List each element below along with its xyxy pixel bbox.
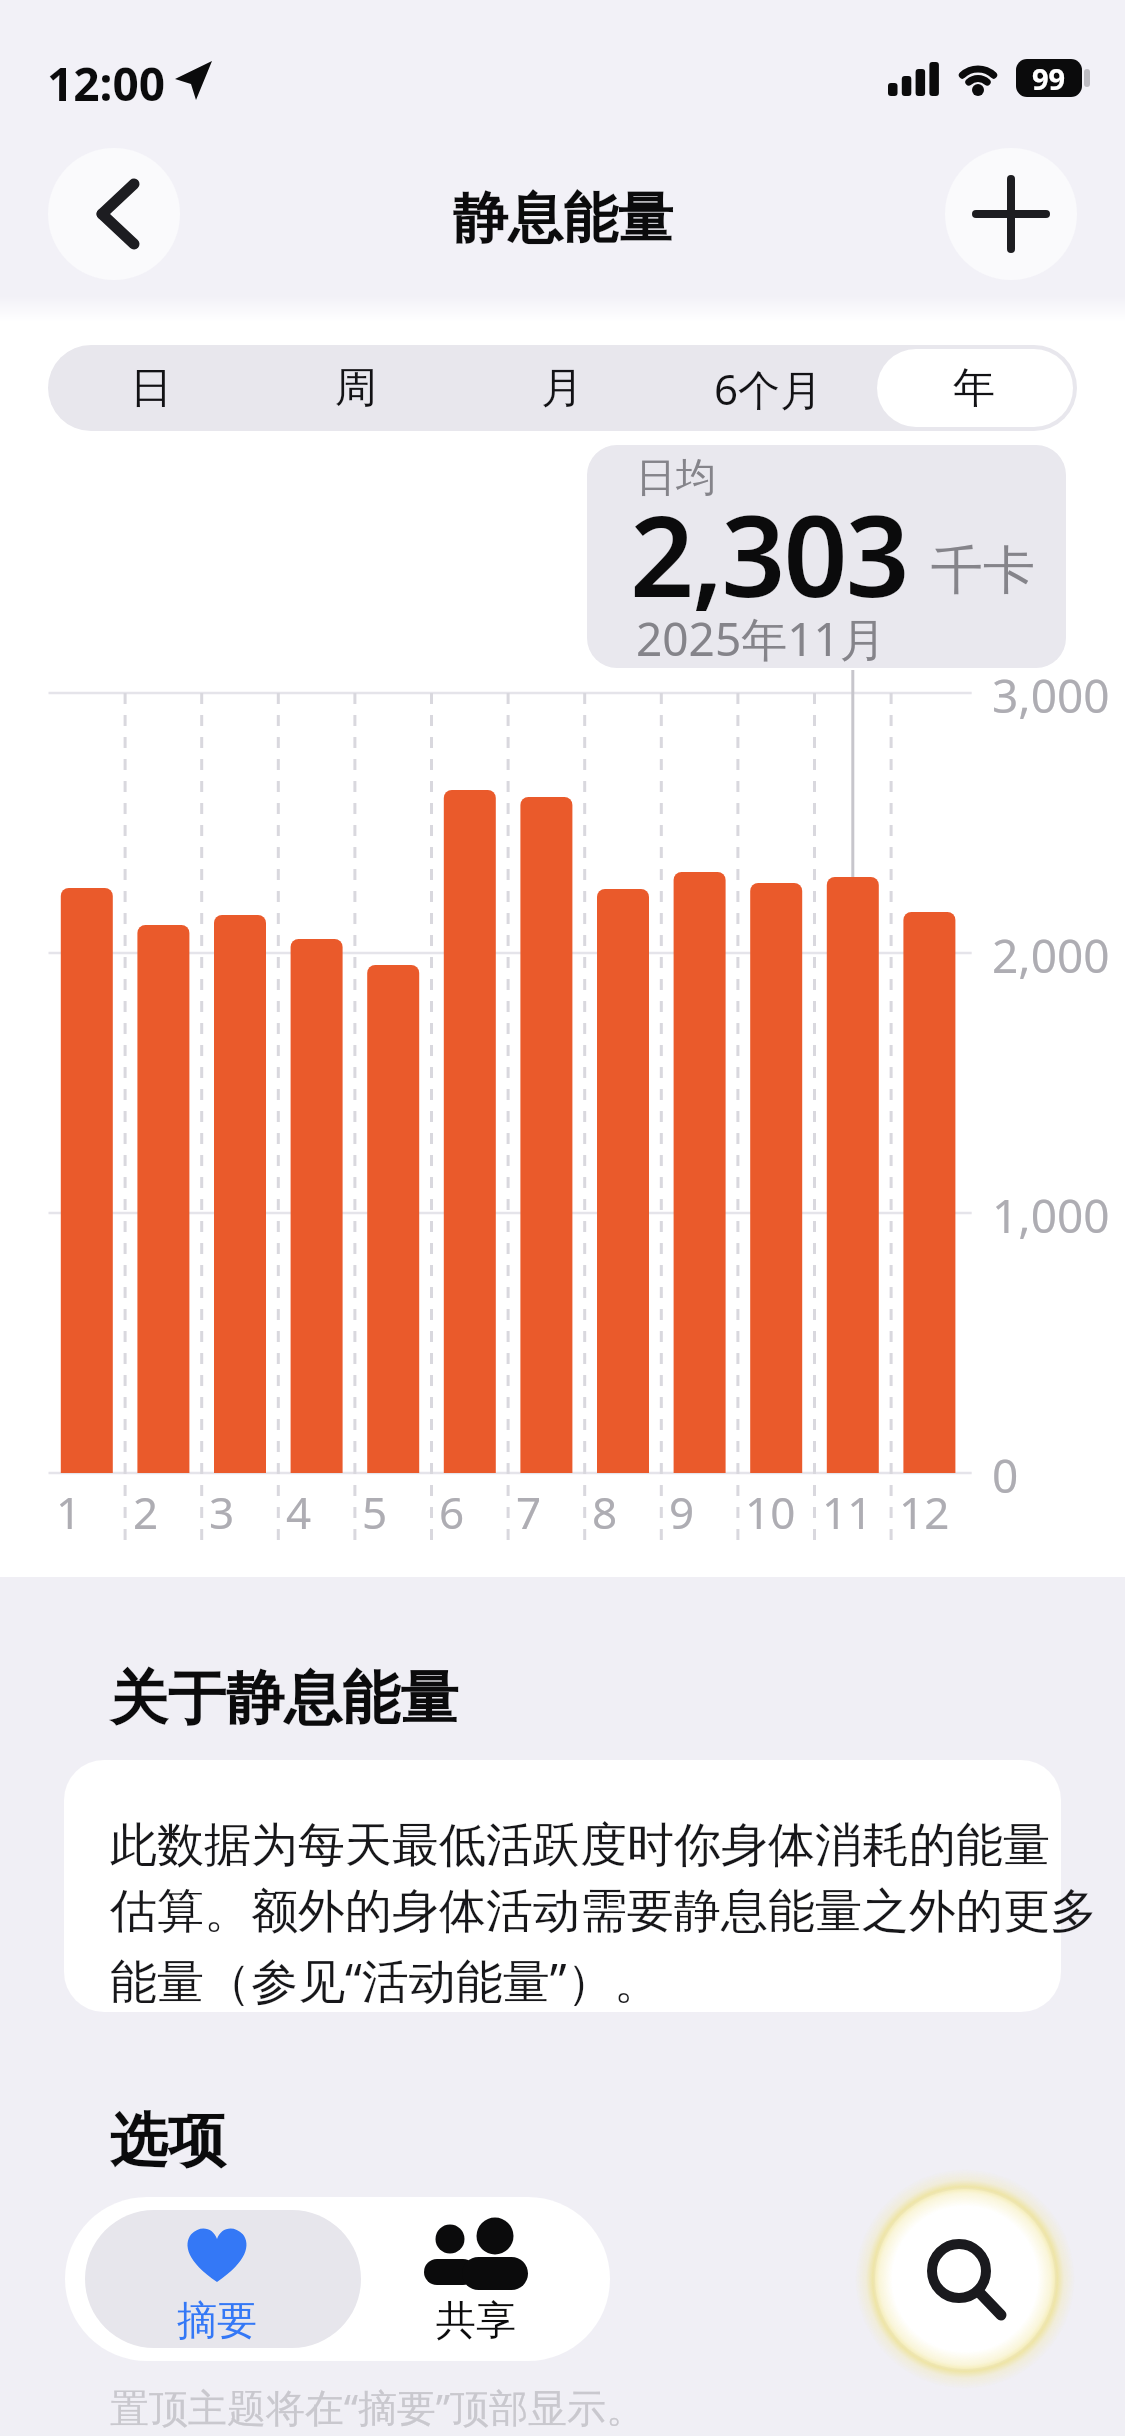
staticText: 共享 <box>436 2295 516 2345</box>
staticText: 2,000 <box>992 924 1110 987</box>
staticText: 6个月 <box>714 360 823 417</box>
button[interactable]: 周 <box>253 345 459 431</box>
staticText: 年 <box>953 362 995 415</box>
staticText: 0 <box>992 1444 1019 1507</box>
staticText: 1 <box>56 1482 82 1542</box>
staticText: 千卡 <box>931 538 1035 604</box>
staticText: 99 <box>1032 59 1066 97</box>
staticText: 能量（参见“活动能量”）。 <box>110 1948 661 2012</box>
staticText: 此数据为每天最低活跃度时你身体消耗的能量 <box>110 1816 1050 1875</box>
staticText: 4 <box>286 1482 312 1542</box>
staticText: 估算。额外的身体活动需要静息能量之外的更多 <box>110 1882 1097 1941</box>
button[interactable]: 日 <box>48 345 253 431</box>
staticText: 周 <box>335 362 377 415</box>
staticText: 3 <box>209 1482 235 1542</box>
button[interactable]: 6个月 <box>665 345 871 431</box>
button[interactable]: 月 <box>459 345 665 431</box>
staticText: 日 <box>130 362 172 415</box>
staticText: 12 <box>899 1482 950 1542</box>
staticText: 月 <box>541 362 583 415</box>
staticText: 3,000 <box>992 664 1110 727</box>
staticText: 静息能量 <box>453 184 673 253</box>
staticText: 选项 <box>110 2104 226 2177</box>
staticText: 9 <box>669 1482 695 1542</box>
staticText: 8 <box>592 1482 618 1542</box>
staticText: 11 <box>822 1482 873 1542</box>
staticText: 5 <box>362 1482 388 1542</box>
button[interactable]: 年 <box>871 345 1077 431</box>
button[interactable] <box>48 148 180 280</box>
staticText: 摘要 <box>177 2295 257 2345</box>
staticText: 1,000 <box>992 1184 1110 1247</box>
button[interactable]: 摘要 <box>85 2197 361 2361</box>
staticText: 2025年11月 <box>636 607 886 670</box>
button[interactable]: 共享 <box>361 2197 610 2361</box>
staticText: 6 <box>439 1482 465 1542</box>
staticText: 12:00 <box>47 52 166 115</box>
button[interactable] <box>945 148 1077 280</box>
staticText: 关于静息能量 <box>110 1662 458 1735</box>
staticText: 7 <box>516 1482 542 1542</box>
staticText: 2,303 <box>630 477 908 630</box>
staticText: 2 <box>133 1482 159 1542</box>
button[interactable] <box>875 2189 1055 2369</box>
staticText: 置顶主题将在“摘要”顶部显示。 <box>110 2380 646 2433</box>
staticText: 10 <box>745 1482 796 1542</box>
staticText: 日均 <box>636 452 716 502</box>
